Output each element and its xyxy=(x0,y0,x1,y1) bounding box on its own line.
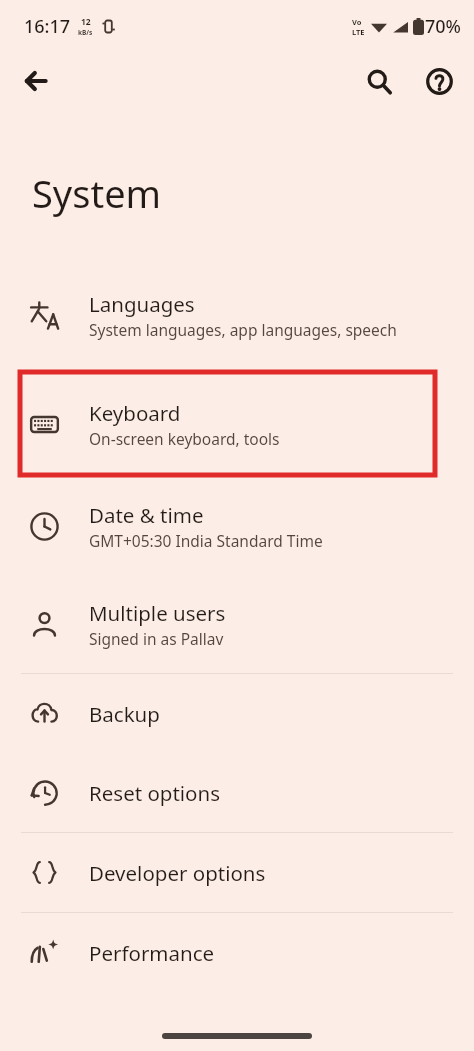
other: Backup xyxy=(30,699,59,728)
other: Date and time xyxy=(30,512,59,541)
button[interactable]: Date and time xyxy=(0,477,474,575)
button[interactable]: Backup xyxy=(0,674,474,753)
button[interactable]: Performance xyxy=(0,913,474,992)
staticText: Multiple users xyxy=(89,599,226,627)
other: Languages xyxy=(30,301,59,330)
staticText: Date & time xyxy=(89,501,204,529)
staticText: Signed in as Pallav xyxy=(89,628,224,649)
staticText: 70% xyxy=(425,14,461,39)
button[interactable]: Search xyxy=(356,58,402,104)
staticText: GMT+05:30 India Standard Time xyxy=(89,530,323,551)
staticText: System languages, app languages, speech xyxy=(89,319,397,340)
button[interactable]: Keyboard xyxy=(0,371,474,477)
button[interactable]: Back xyxy=(14,59,58,103)
button[interactable]: Help xyxy=(416,58,462,104)
staticText: Performance xyxy=(89,939,215,967)
staticText: On-screen keyboard, tools xyxy=(89,428,280,449)
staticText: Languages xyxy=(89,290,195,318)
staticText: Keyboard xyxy=(89,399,181,427)
button[interactable]: Developer options xyxy=(0,833,474,912)
staticText: Developer options xyxy=(89,859,266,887)
staticText: kB/s xyxy=(78,28,93,37)
other: Multiple users xyxy=(30,610,59,639)
other: Reset options xyxy=(30,778,59,807)
staticText: 12 xyxy=(81,16,91,28)
staticText: Reset options xyxy=(89,779,221,807)
button[interactable]: Multiple users xyxy=(0,575,474,673)
staticText: Vo xyxy=(352,17,362,27)
staticText: 16:17 xyxy=(24,14,71,39)
other: Keyboard xyxy=(30,410,59,439)
other: Performance xyxy=(30,938,59,967)
button[interactable]: Reset options xyxy=(0,753,474,832)
staticText: Backup xyxy=(89,700,160,728)
other: Developer options xyxy=(30,858,59,887)
button[interactable]: Languages xyxy=(0,259,474,371)
staticText: System xyxy=(32,167,162,219)
staticText: LTE xyxy=(352,27,365,37)
